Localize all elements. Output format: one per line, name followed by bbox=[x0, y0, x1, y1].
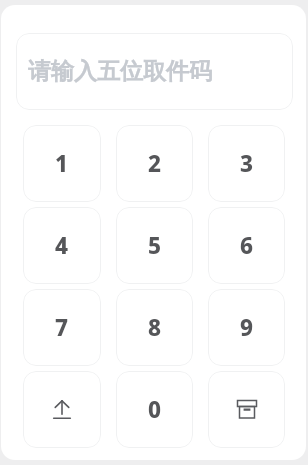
staticText: 9 bbox=[240, 312, 254, 343]
button[interactable]: 4 bbox=[23, 207, 101, 284]
button[interactable]: 1 bbox=[23, 125, 101, 202]
button[interactable]: Delete bbox=[208, 371, 285, 448]
staticText: 1 bbox=[55, 148, 69, 179]
staticText: 请输入五位取件码 bbox=[28, 57, 212, 86]
staticText: 4 bbox=[55, 230, 69, 261]
button[interactable]: 8 bbox=[116, 289, 193, 366]
staticText: 5 bbox=[148, 230, 162, 261]
button[interactable]: 7 bbox=[23, 289, 101, 366]
staticText: 3 bbox=[240, 148, 254, 179]
button[interactable]: 请输入五位取件码 bbox=[16, 33, 293, 110]
staticText: 8 bbox=[148, 312, 162, 343]
button[interactable]: 2 bbox=[116, 125, 193, 202]
button[interactable]: 0 bbox=[116, 371, 193, 448]
button[interactable]: 6 bbox=[208, 207, 285, 284]
staticText: 7 bbox=[55, 312, 69, 343]
button[interactable]: 5 bbox=[116, 207, 193, 284]
button[interactable]: Upload bbox=[23, 371, 101, 448]
staticText: 2 bbox=[148, 148, 162, 179]
button[interactable]: 9 bbox=[208, 289, 285, 366]
staticText: 6 bbox=[240, 230, 254, 261]
staticText: 0 bbox=[148, 394, 162, 425]
button[interactable]: 3 bbox=[208, 125, 285, 202]
